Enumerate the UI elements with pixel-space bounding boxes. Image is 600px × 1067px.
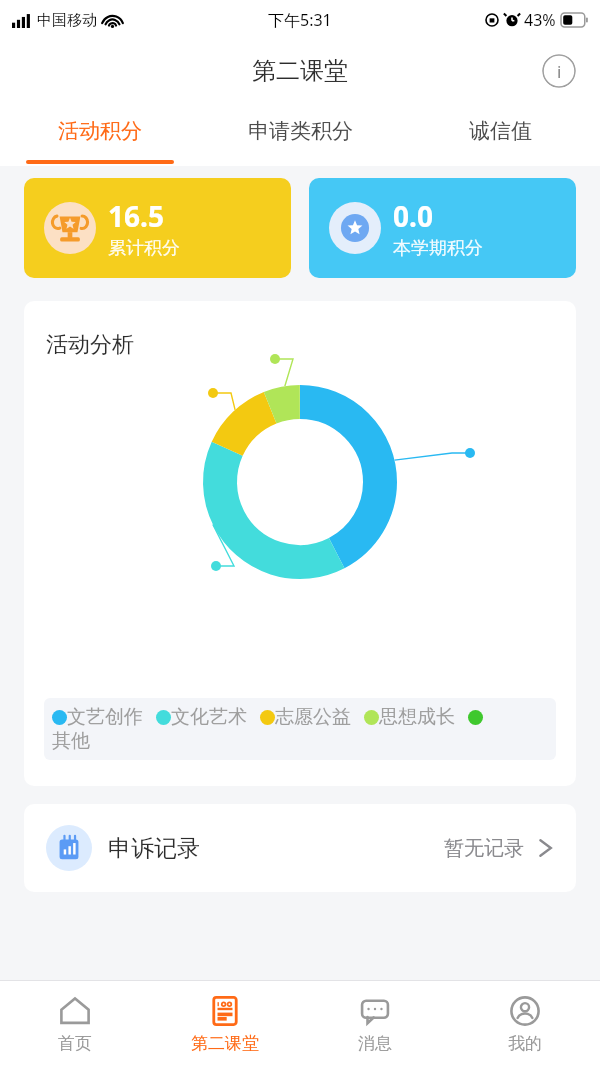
staticText: 0.0 [393, 197, 433, 235]
staticText: 诚信值 [469, 118, 532, 144]
staticText: 第二课堂 [252, 56, 348, 86]
staticText: 累计积分 [108, 237, 180, 260]
staticText: 活动分析 [46, 331, 134, 359]
staticText: 思想成长 [379, 705, 455, 729]
staticText: 本学期积分 [393, 237, 483, 260]
staticText: 活动积分 [58, 118, 142, 144]
staticText: 我的 [508, 1033, 542, 1054]
staticText: 第二课堂 [191, 1033, 259, 1054]
button[interactable]: 我的 [450, 981, 600, 1067]
button[interactable]: 16.5 [24, 178, 291, 278]
button[interactable]: 申请类积分 [200, 102, 400, 166]
staticText: 首页 [58, 1033, 92, 1054]
staticText: 文化艺术 [171, 705, 247, 729]
staticText: i [557, 60, 562, 83]
staticText: 暂无记录 [444, 836, 524, 861]
staticText: 中国移动 [37, 11, 97, 30]
staticText: 申请类积分 [248, 118, 353, 144]
button[interactable]: 消息 [300, 981, 450, 1067]
button[interactable]: 0.0 [309, 178, 576, 278]
button[interactable]: 诚信值 [400, 102, 600, 166]
staticText: 申诉记录 [108, 834, 200, 863]
staticText: 16.5 [108, 197, 164, 235]
staticText: 文艺创作 [67, 705, 143, 729]
button[interactable]: Information [542, 54, 576, 88]
button[interactable]: 首页 [0, 981, 150, 1067]
staticText: 志愿公益 [275, 705, 351, 729]
button[interactable]: 申诉记录 [24, 804, 576, 892]
button[interactable]: 第二课堂 [150, 981, 300, 1067]
staticText: 消息 [358, 1033, 392, 1054]
staticText: 43% [524, 9, 556, 31]
staticText: 下午5:31 [268, 9, 332, 31]
staticText: 其他 [52, 729, 90, 753]
button[interactable]: 活动积分 [0, 102, 200, 166]
